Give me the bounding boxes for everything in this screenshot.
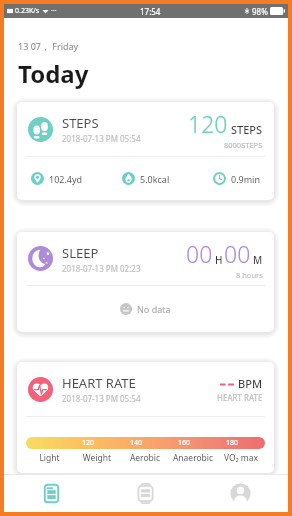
staticText: 00	[186, 238, 213, 269]
staticText: HEART RATE	[217, 392, 263, 403]
staticText: STEPS	[62, 114, 99, 132]
staticText: Aerobic	[121, 452, 169, 464]
button[interactable]: Device	[98, 475, 193, 512]
button[interactable]: HEART RATE	[17, 362, 274, 473]
staticText: STEPS	[231, 122, 263, 137]
staticText: 98%	[252, 6, 268, 17]
staticText: 102.4yd	[49, 173, 83, 185]
staticText: 160	[160, 438, 208, 448]
staticText: 13 07， Friday	[18, 40, 79, 52]
staticText: BPM	[238, 376, 263, 391]
staticText: No data	[137, 303, 171, 315]
staticText: 120	[188, 108, 228, 139]
staticText	[26, 438, 73, 448]
staticText: HEART RATE	[62, 374, 136, 392]
staticText: 8000STEPS	[224, 140, 263, 150]
staticText: Anaerobic	[169, 452, 217, 464]
staticText: 0.9min	[231, 173, 261, 185]
staticText: 8 hours	[236, 270, 263, 280]
button[interactable]: Today	[4, 475, 98, 512]
staticText: SLEEP	[62, 244, 99, 262]
staticText: 120	[64, 438, 112, 448]
staticText: Today	[18, 57, 89, 90]
staticText: Weight	[73, 452, 121, 464]
staticText: 2018-07-13 PM 05:54	[62, 393, 141, 404]
staticText: H	[215, 253, 223, 267]
staticText: M	[253, 253, 263, 267]
staticText: 5.0kcal	[140, 173, 170, 185]
button[interactable]: SLEEP	[17, 232, 274, 332]
staticText: 00	[224, 238, 251, 269]
staticText: 17:54	[140, 6, 161, 17]
staticText: Light	[26, 452, 73, 464]
button[interactable]: Profile	[193, 475, 288, 512]
staticText: 140	[112, 438, 160, 448]
staticText: VO₂ max	[217, 452, 265, 464]
staticText: 2018-07-13 PM 02:23	[62, 263, 141, 274]
staticText: 0.23K/s	[15, 6, 40, 16]
staticText: ···	[51, 6, 57, 16]
staticText: 180	[208, 438, 256, 448]
staticText: 2018-07-13 PM 05:54	[62, 133, 141, 144]
button[interactable]: STEPS	[17, 102, 274, 200]
